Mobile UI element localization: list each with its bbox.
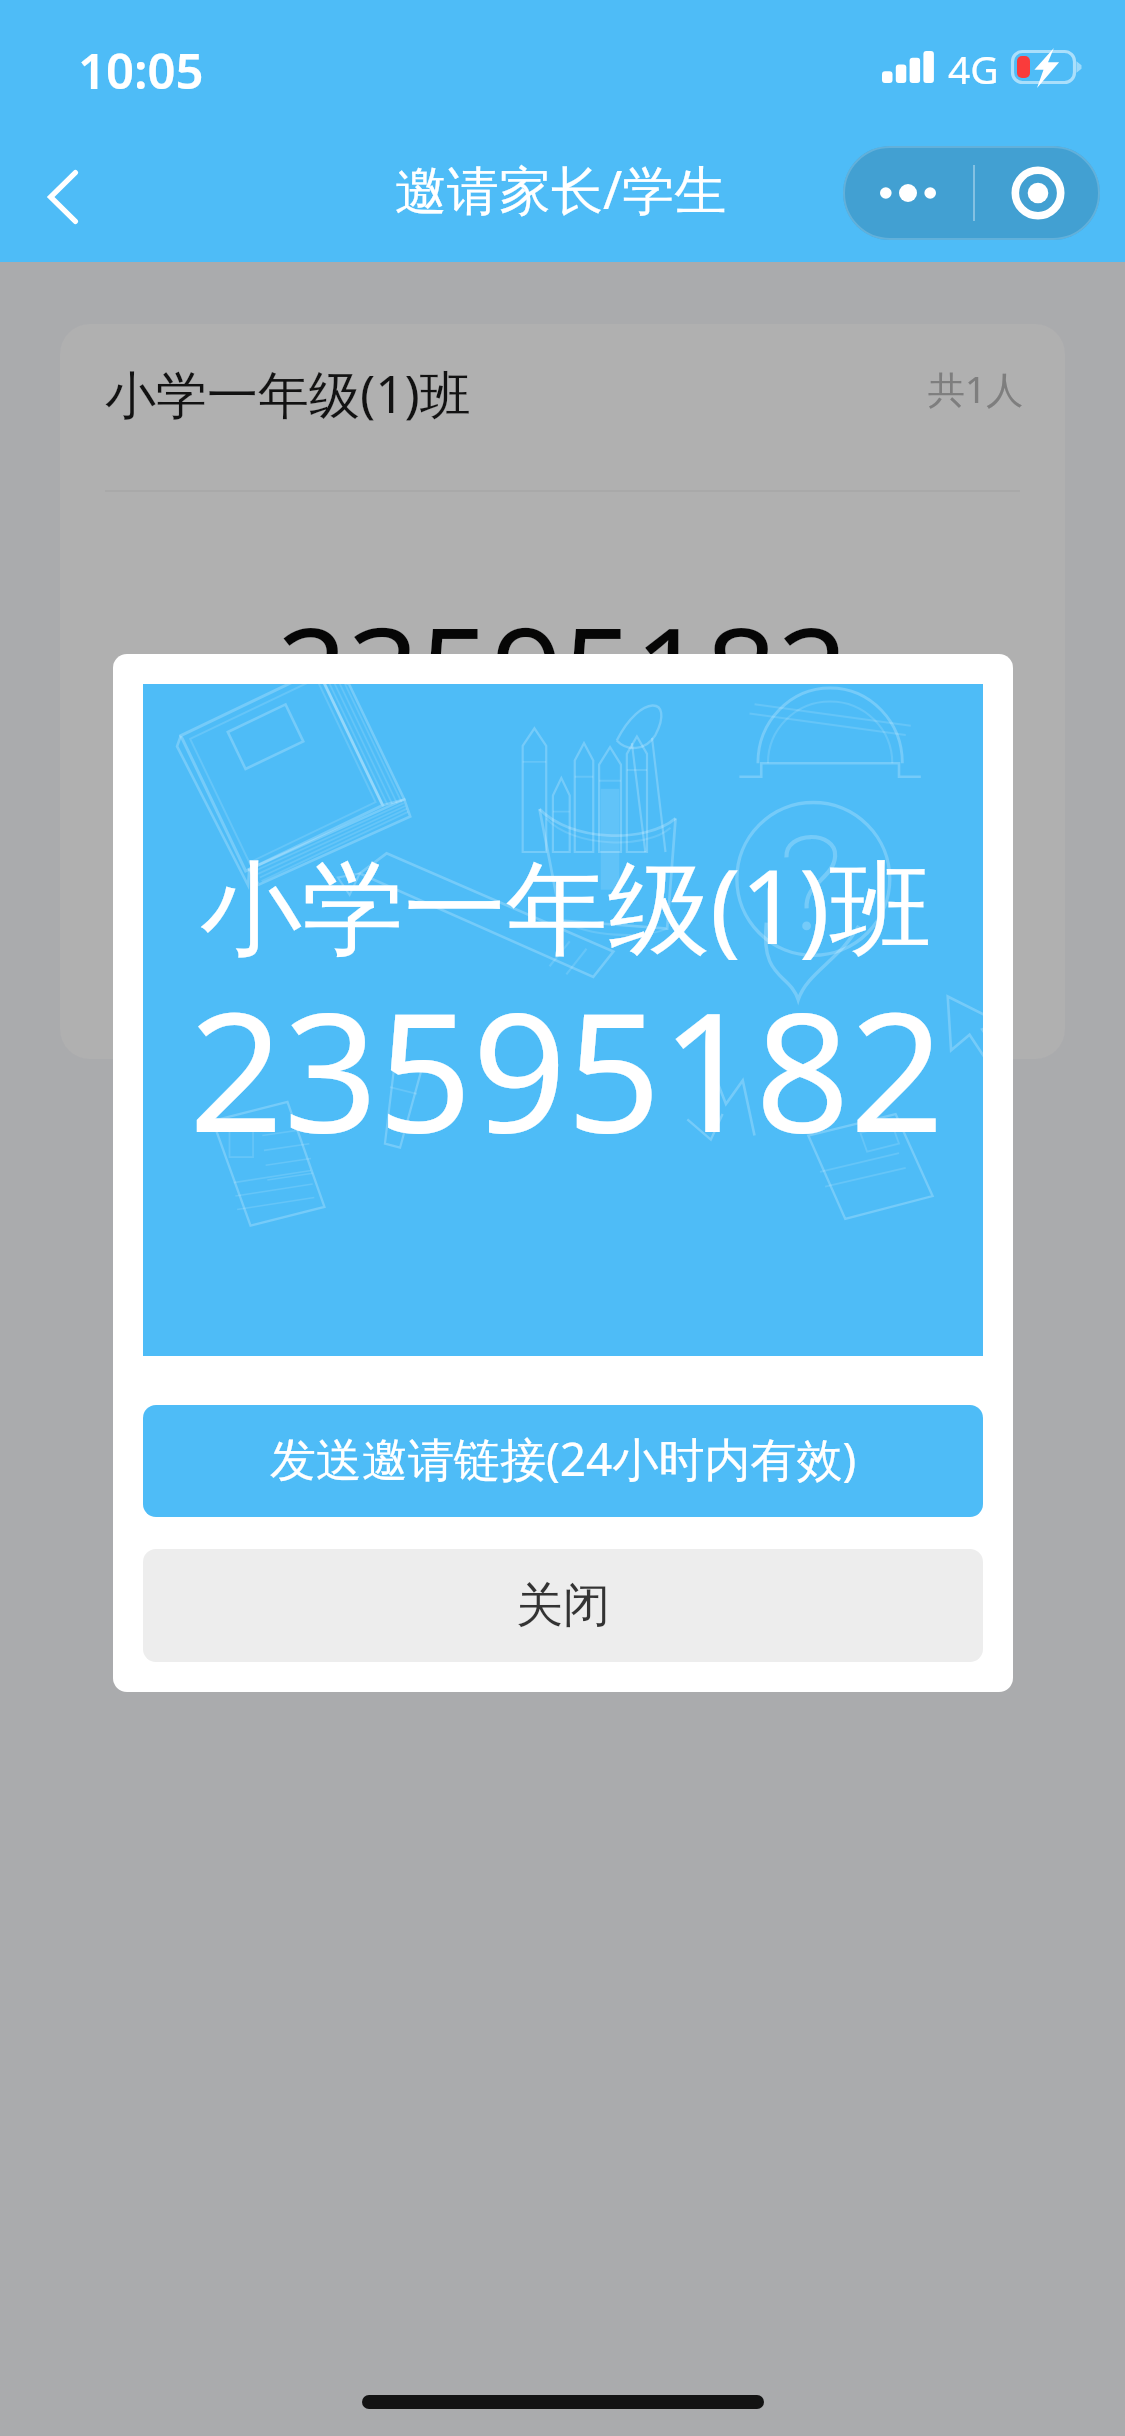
button[interactable]: Back: [22, 149, 104, 245]
staticText: 23595182: [189, 956, 945, 1181]
button[interactable]: 关闭: [143, 1549, 983, 1662]
button[interactable]: 小学一年级(1)班: [60, 324, 1065, 1059]
button[interactable]: 发送邀请链接(24小时内有效): [143, 1405, 983, 1517]
staticText: 关闭: [516, 1576, 610, 1635]
staticText: 23595182: [60, 584, 1065, 754]
staticText: 4G: [948, 42, 999, 95]
staticText: 小学一年级(1)班: [200, 835, 932, 974]
button[interactable]: More options: [843, 146, 973, 240]
staticText: 邀请家长/学生: [395, 153, 727, 224]
staticText: 10:05: [78, 37, 204, 104]
button[interactable]: Invitation poster: [143, 684, 983, 1356]
staticText: 共1人: [928, 363, 1024, 414]
button[interactable]: Close mini program: [975, 146, 1100, 240]
staticText: 发送邀请链接(24小时内有效): [270, 1427, 857, 1490]
button[interactable]: Dismiss dialog: [0, 262, 1125, 2436]
staticText: 小学一年级(1)班: [105, 358, 471, 428]
